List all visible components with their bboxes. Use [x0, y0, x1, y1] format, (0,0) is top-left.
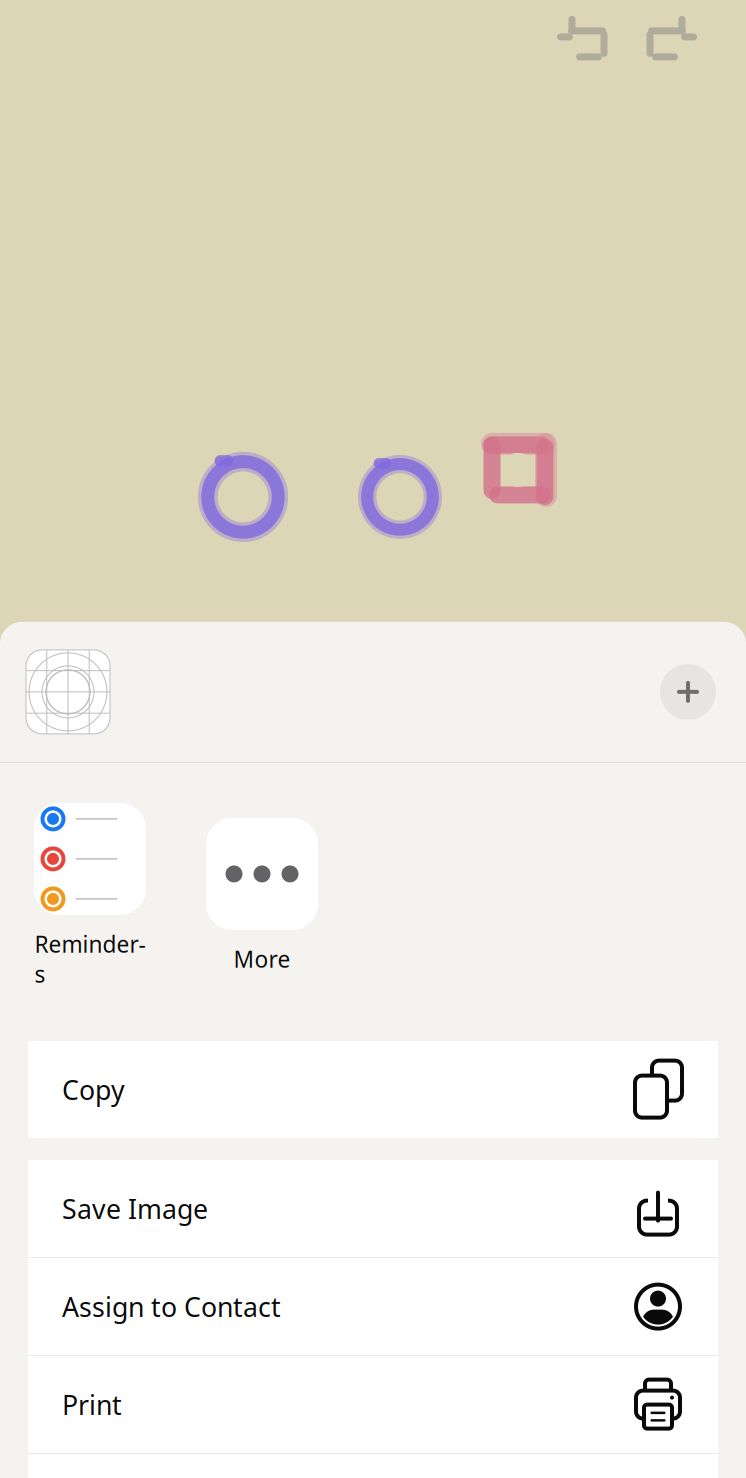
staticText: Copy	[62, 1072, 125, 1107]
button[interactable]: Undo	[554, 14, 616, 76]
button[interactable]: Assign to Contact	[28, 1258, 718, 1355]
button[interactable]: More	[206, 818, 318, 974]
staticText: More	[233, 944, 290, 974]
staticText: Print	[62, 1387, 122, 1422]
button[interactable]: Save Image	[28, 1160, 718, 1257]
staticText: Reminders	[34, 929, 145, 989]
button[interactable]: Redo	[638, 14, 700, 76]
staticText: Save Image	[62, 1191, 208, 1226]
button[interactable]: Reminders	[34, 803, 146, 989]
button[interactable]: Close	[656, 660, 720, 724]
button[interactable]: Print	[28, 1356, 718, 1453]
button[interactable]: Copy	[28, 1041, 718, 1138]
staticText: Assign to Contact	[62, 1289, 281, 1324]
